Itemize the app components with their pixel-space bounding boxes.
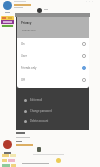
staticText: Privacy	[21, 21, 32, 25]
button[interactable]: Edit email	[16, 95, 89, 105]
staticText: Friends only	[21, 66, 37, 70]
button[interactable]: User	[17, 50, 89, 62]
staticText: Change password	[30, 109, 52, 113]
staticText: Friends only	[22, 28, 36, 31]
button[interactable]: Change password	[16, 106, 89, 116]
staticText: Delete account	[30, 119, 49, 123]
button[interactable]: Delete account	[16, 116, 89, 126]
button[interactable]: Lock	[37, 8, 42, 13]
button[interactable]: Profile avatar	[3, 1, 12, 10]
button[interactable]: Advertisement	[1, 16, 14, 27]
staticText: On	[21, 42, 25, 46]
staticText: Off	[21, 78, 25, 82]
button[interactable]: On	[17, 38, 89, 50]
button[interactable]: Off	[17, 74, 89, 86]
staticText: User	[21, 54, 27, 58]
button[interactable]: Friends only	[17, 62, 89, 74]
staticText: Edit email	[30, 98, 42, 102]
